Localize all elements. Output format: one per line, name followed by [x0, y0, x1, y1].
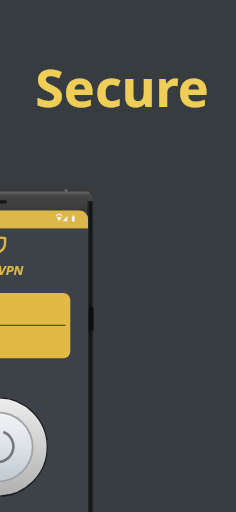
staticText: VPN	[0, 261, 24, 279]
staticText: Secure	[35, 51, 209, 122]
